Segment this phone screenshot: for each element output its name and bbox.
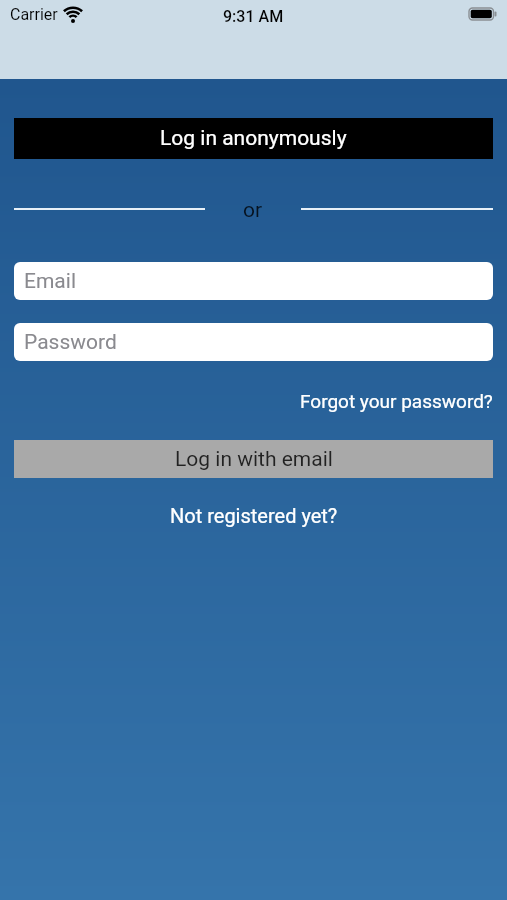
staticText: Log in anonymously (160, 126, 347, 151)
staticText: 9:31 AM (223, 7, 284, 26)
button[interactable]: Not registered yet? (170, 504, 338, 527)
staticText: or (243, 198, 263, 220)
staticText: Log in with email (175, 447, 333, 472)
button[interactable]: Email (14, 262, 493, 300)
staticText: Password (24, 330, 117, 355)
button[interactable]: Forgot your password? (300, 390, 493, 412)
staticText: Carrier (10, 5, 58, 24)
button[interactable]: Log in with email (14, 440, 493, 478)
button[interactable]: Password (14, 323, 493, 361)
staticText: Email (24, 269, 76, 294)
button[interactable]: Log in anonymously (14, 118, 493, 159)
